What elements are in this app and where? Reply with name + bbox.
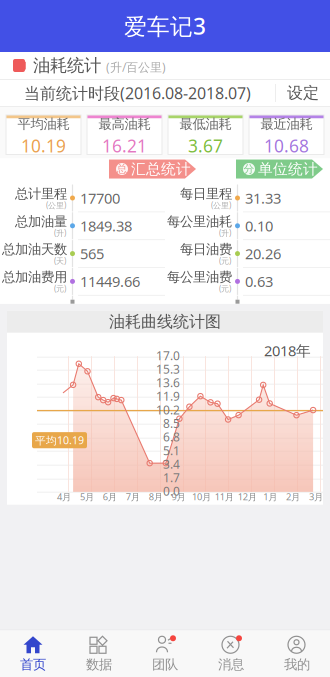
staticText: 1.7 [163, 470, 180, 485]
staticText: 31.33 [245, 188, 281, 208]
staticText: 数据 [86, 656, 112, 673]
staticText: 每公里油耗 [167, 213, 232, 230]
staticText: 最近油耗 [260, 116, 312, 132]
staticText: 当前统计时段(2016.08-2018.07) [24, 82, 251, 104]
staticText: 10.68 [264, 134, 309, 157]
button[interactable]: 数据 [66, 630, 132, 677]
staticText: 0.0 [163, 483, 180, 499]
staticText: 每公里油费 [167, 269, 232, 285]
staticText: 10月 [192, 490, 211, 503]
button[interactable]: 设定 [276, 80, 330, 106]
staticText: (升) [219, 228, 231, 238]
staticText: 16.21 [102, 134, 147, 157]
staticText: 我的 [284, 656, 310, 673]
staticText: 6月 [103, 490, 117, 503]
staticText: 首页 [20, 656, 46, 673]
staticText: 3.4 [163, 456, 180, 472]
staticText: 总加油天数 [2, 241, 67, 257]
staticText: 1849.38 [80, 216, 132, 236]
staticText: 5.1 [163, 442, 180, 458]
staticText: 消息 [218, 656, 244, 673]
staticText: 最低油耗 [179, 116, 231, 132]
staticText: (升/百公里) [106, 59, 166, 75]
staticText: 17700 [80, 188, 120, 208]
staticText: (元) [54, 283, 66, 294]
staticText: 11.9 [156, 388, 180, 404]
staticText: 6.8 [163, 429, 180, 445]
button[interactable]: 首页 [0, 630, 66, 677]
staticText: 2018年 [264, 341, 311, 360]
staticText: (升) [54, 228, 66, 238]
staticText: (公里) [211, 200, 231, 210]
staticText: 20.26 [245, 244, 281, 263]
staticText: 565 [80, 244, 104, 263]
staticText: 总加油量 [15, 213, 67, 230]
staticText: 团队 [152, 656, 178, 673]
staticText: 每日里程 [180, 185, 232, 202]
button[interactable]: 团队 [132, 630, 198, 677]
staticText: 总加油费用 [2, 269, 67, 285]
staticText: (公里) [46, 200, 66, 210]
staticText: 平均10.19 [35, 433, 84, 447]
staticText: 4月 [57, 490, 71, 503]
staticText: 10.2 [156, 402, 180, 418]
staticText: 0.10 [245, 216, 273, 236]
staticText: 8.5 [163, 415, 180, 431]
staticText: 11月 [215, 490, 234, 503]
staticText: 汇总统计 [131, 160, 191, 178]
staticText: 每日油费 [180, 241, 232, 257]
staticText: 9月 [172, 490, 186, 503]
staticText: 1月 [263, 490, 277, 503]
staticText: 总 [116, 162, 127, 175]
staticText: 10.19 [21, 134, 66, 157]
staticText: 15.3 [156, 361, 180, 377]
staticText: 2月 [286, 490, 300, 503]
staticText: 总计里程 [15, 185, 67, 202]
button[interactable]: 消息 [198, 630, 264, 677]
staticText: 12月 [238, 490, 257, 503]
button[interactable]: 我的 [264, 630, 330, 677]
staticText: 5月 [80, 490, 94, 503]
staticText: (元) [219, 283, 231, 294]
staticText: 爱车记3 [124, 11, 206, 41]
staticText: 13.6 [156, 375, 180, 391]
staticText: 11449.66 [80, 272, 140, 291]
staticText: 3月 [309, 490, 323, 503]
staticText: 17.0 [156, 347, 180, 363]
staticText: 7月 [126, 490, 140, 503]
staticText: 平均油耗 [17, 116, 69, 132]
staticText: 0.63 [245, 272, 273, 291]
staticText: (元) [219, 255, 231, 266]
staticText: 单位统计 [258, 160, 318, 178]
staticText: 分 [243, 162, 254, 175]
staticText: 最高油耗 [98, 116, 150, 132]
staticText: 油耗统计 [33, 55, 101, 76]
staticText: (天) [54, 255, 66, 266]
staticText: 8月 [149, 490, 163, 503]
staticText: 设定 [287, 83, 319, 103]
staticText: 油耗曲线统计图 [109, 312, 221, 332]
staticText: 3.67 [188, 134, 223, 157]
